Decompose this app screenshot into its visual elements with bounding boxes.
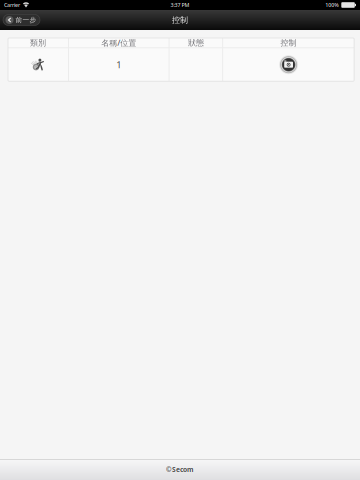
staticText: 控制 — [172, 15, 188, 25]
button[interactable]: Camera — [276, 52, 302, 78]
staticText: ©Secom — [166, 465, 194, 474]
staticText: 3:37 PM — [170, 1, 189, 9]
staticText: 100% — [325, 1, 339, 9]
staticText: 1 — [116, 58, 121, 71]
button[interactable]: 前一步 — [3, 14, 40, 25]
staticText: Carrier — [4, 1, 20, 9]
staticText: 名稱/位置 — [101, 37, 136, 48]
staticText: 狀態 — [188, 38, 204, 48]
staticText: 類別 — [30, 38, 46, 48]
staticText: 前一步 — [15, 16, 36, 24]
staticText: 控制 — [281, 38, 297, 48]
